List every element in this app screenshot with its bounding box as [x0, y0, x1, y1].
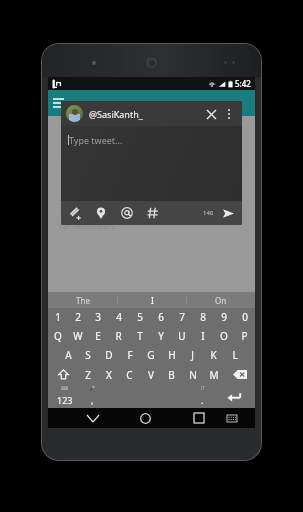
- staticText: 3: [95, 310, 101, 324]
- staticText: B: [168, 368, 175, 382]
- staticText: N: [189, 368, 197, 382]
- staticText: P: [241, 329, 248, 343]
- staticText: .: [201, 394, 204, 406]
- button[interactable]: 3: [88, 308, 108, 326]
- button[interactable]: Y: [150, 326, 171, 345]
- staticText: Z: [85, 368, 91, 382]
- button[interactable]: H: [161, 345, 182, 364]
- staticText: U: [178, 329, 186, 343]
- button[interactable]: On: [187, 292, 255, 308]
- button[interactable]: Add location: [92, 204, 110, 222]
- button[interactable]: N: [182, 364, 203, 385]
- button[interactable]: Period: [191, 385, 214, 408]
- button[interactable]: F: [119, 345, 140, 364]
- staticText: W: [73, 329, 83, 343]
- button[interactable]: W: [68, 326, 88, 345]
- button[interactable]: Attach photo: [66, 204, 84, 222]
- staticText: L: [232, 348, 238, 362]
- staticText: E: [95, 329, 101, 343]
- button[interactable]: 5: [129, 308, 150, 326]
- staticText: K: [210, 348, 217, 362]
- button[interactable]: 4: [108, 308, 129, 326]
- staticText: 8: [200, 310, 206, 324]
- button[interactable]: L: [224, 345, 245, 364]
- button[interactable]: B: [161, 364, 182, 385]
- button[interactable]: T: [129, 326, 150, 345]
- staticText: D: [105, 348, 113, 362]
- button[interactable]: Switch keyboard: [215, 408, 248, 428]
- staticText: 5: [137, 310, 143, 324]
- button[interactable]: 0: [234, 308, 255, 326]
- button[interactable]: C: [119, 364, 140, 385]
- button[interactable]: Home: [129, 408, 162, 428]
- button[interactable]: J: [182, 345, 203, 364]
- button[interactable]: D: [98, 345, 119, 364]
- button[interactable]: The: [48, 292, 117, 308]
- staticText: 9: [221, 310, 227, 324]
- button[interactable]: S: [78, 345, 98, 364]
- staticText: The: [76, 295, 90, 306]
- button[interactable]: Z: [78, 364, 98, 385]
- button[interactable]: Backspace: [224, 364, 255, 385]
- staticText: @SasiKanth_: [89, 108, 143, 120]
- staticText: H: [168, 348, 176, 362]
- staticText: 0: [242, 310, 248, 324]
- staticText: C: [126, 368, 133, 382]
- button[interactable]: Add hashtag: [144, 204, 162, 222]
- staticText: Q: [54, 329, 62, 343]
- staticText: S: [85, 348, 91, 362]
- button[interactable]: K: [203, 345, 224, 364]
- staticText: 7: [179, 310, 185, 324]
- button[interactable]: Shift: [48, 364, 78, 385]
- button[interactable]: Send tweet: [219, 204, 237, 222]
- button[interactable]: X: [98, 364, 119, 385]
- button[interactable]: 6: [150, 308, 171, 326]
- staticText: 🎤: [89, 385, 96, 391]
- staticText: I: [201, 329, 205, 343]
- button[interactable]: Enter: [214, 385, 255, 408]
- staticText: 123: [57, 394, 73, 406]
- button[interactable]: A: [58, 345, 78, 364]
- staticText: X: [106, 368, 112, 382]
- staticText: M: [209, 368, 219, 382]
- button[interactable]: Symbols: [48, 385, 81, 408]
- button[interactable]: I: [192, 326, 213, 345]
- staticText: Type tweet...: [69, 134, 123, 146]
- button[interactable]: V: [140, 364, 161, 385]
- button[interactable]: 8: [192, 308, 213, 326]
- staticText: 5:42: [235, 78, 251, 89]
- button[interactable]: 1: [48, 308, 68, 326]
- button[interactable]: Hide keyboard: [77, 408, 109, 428]
- button[interactable]: Mention someone: [118, 204, 136, 222]
- button[interactable]: 2: [68, 308, 88, 326]
- button[interactable]: Recent apps: [182, 408, 215, 428]
- button[interactable]: Q: [48, 326, 68, 345]
- button[interactable]: G: [140, 345, 161, 364]
- staticText: F: [127, 348, 133, 362]
- staticText: 140: [203, 209, 214, 217]
- button[interactable]: Type tweet...: [61, 126, 242, 201]
- button[interactable]: I: [118, 292, 186, 308]
- button[interactable]: O: [213, 326, 234, 345]
- button[interactable]: Comma: [81, 385, 104, 408]
- button[interactable]: 7: [171, 308, 192, 326]
- button[interactable]: E: [88, 326, 108, 345]
- staticText: ,: [91, 394, 94, 406]
- staticText: VIA Developers: [58, 220, 115, 231]
- button[interactable]: M: [203, 364, 224, 385]
- button[interactable]: P: [234, 326, 255, 345]
- staticText: R: [115, 329, 122, 343]
- staticText: A: [65, 348, 72, 362]
- button[interactable]: More options: [221, 106, 237, 122]
- button[interactable]: Close: [201, 104, 221, 124]
- button[interactable]: R: [108, 326, 129, 345]
- staticText: 4: [116, 310, 122, 324]
- staticText: 1: [55, 310, 61, 324]
- staticText: 6: [158, 310, 164, 324]
- staticText: On: [215, 295, 227, 306]
- button[interactable]: 9: [213, 308, 234, 326]
- button[interactable]: U: [171, 326, 192, 345]
- staticText: V: [148, 368, 154, 382]
- staticText: ⌨: [61, 385, 69, 391]
